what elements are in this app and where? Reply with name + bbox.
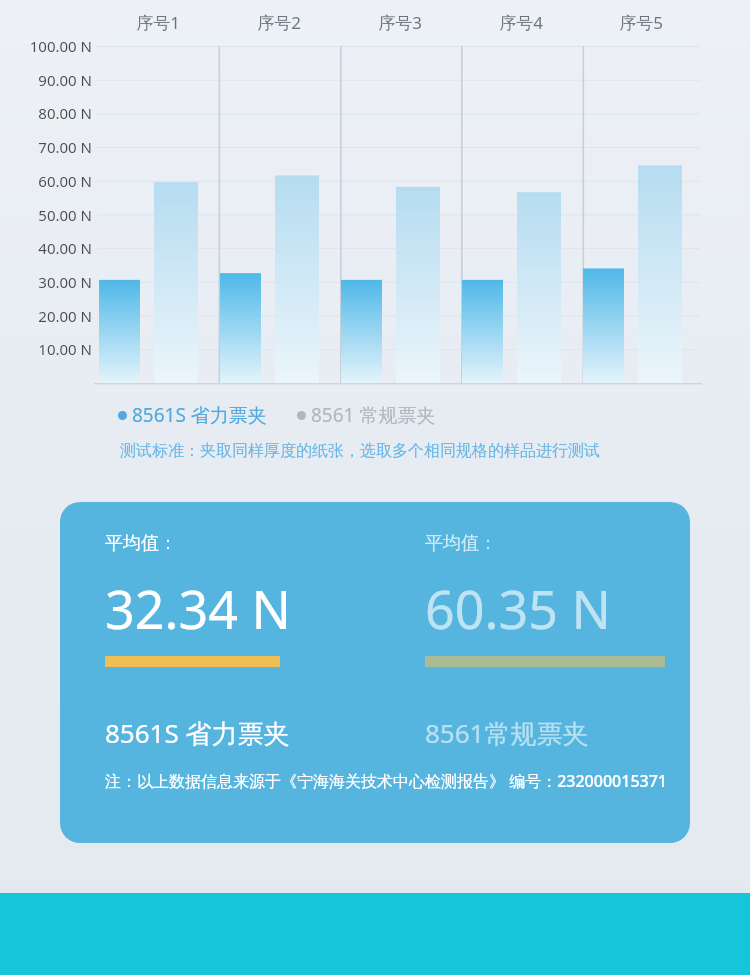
staticText: 70.00 N — [0, 137, 92, 157]
staticText: 50.00 N — [0, 205, 92, 225]
staticText: 8561S 省力票夹 — [132, 402, 267, 428]
staticText: 40.00 N — [0, 238, 92, 258]
staticText: 注：以上数据信息来源于《宁海海关技术中心检测报告》 编号：23200001537… — [105, 770, 667, 792]
staticText: 90.00 N — [0, 70, 92, 90]
staticText: 序号5 — [596, 11, 686, 34]
staticText: 序号1 — [113, 11, 203, 34]
staticText: 60.00 N — [0, 171, 92, 191]
staticText: 序号4 — [476, 11, 566, 34]
staticText: 测试标准：夹取同样厚度的纸张，选取多个相同规格的样品进行测试 — [120, 441, 600, 461]
staticText: 32.34 N — [105, 573, 291, 644]
button[interactable]: 8561S 省力票夹 — [118, 402, 436, 428]
staticText: 8561常规票夹 — [425, 715, 589, 751]
staticText: 100.00 N — [0, 36, 92, 56]
staticText: 8561 常规票夹 — [311, 402, 436, 428]
staticText: 序号2 — [234, 11, 324, 34]
staticText: 平均值： — [105, 532, 177, 555]
staticText: 30.00 N — [0, 272, 92, 292]
staticText: 序号3 — [355, 11, 445, 34]
staticText: 8561S 省力票夹 — [105, 715, 290, 751]
staticText: 20.00 N — [0, 306, 92, 326]
staticText: 80.00 N — [0, 103, 92, 123]
staticText: 60.35 N — [425, 573, 611, 644]
staticText: 10.00 N — [0, 339, 92, 359]
button[interactable]: 平均值： — [60, 502, 690, 843]
staticText: 平均值： — [425, 532, 497, 555]
